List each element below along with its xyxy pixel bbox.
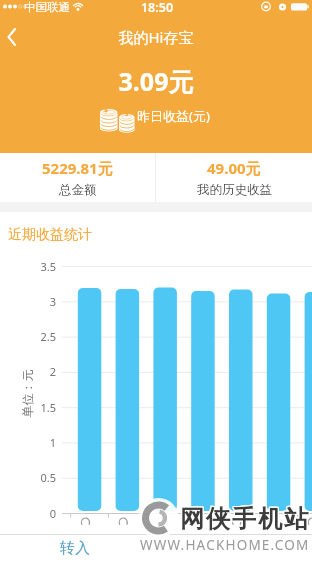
button[interactable]: 转入 (0, 535, 150, 562)
staticText: 3.09元 (56, 64, 256, 98)
staticText: WWW.HACKHOME.COM (140, 536, 310, 554)
staticText: 转入 (60, 539, 90, 558)
staticText: 近期收益统计 (8, 226, 92, 244)
staticText: $ (104, 105, 109, 115)
staticText: 中国联通 (24, 0, 70, 14)
staticText: 2 (20, 364, 56, 379)
staticText: 0 (20, 506, 56, 521)
staticText: 总金额 (59, 182, 97, 198)
staticText: 网侠手机站 (179, 504, 309, 534)
staticText: 网侠手机站 (178, 504, 308, 534)
staticText: 我的历史收益 (197, 182, 272, 198)
staticText: 3 (20, 294, 56, 309)
staticText: 网侠手机站 (180, 503, 310, 533)
staticText: 网侠手机站 (178, 505, 308, 535)
staticText: 网侠手机站 (180, 505, 310, 535)
staticText: 1 (20, 435, 56, 450)
button[interactable] (0, 22, 34, 52)
staticText: 网侠手机站 (178, 503, 308, 533)
button[interactable]: 5229.81元 (0, 153, 155, 202)
staticText: 网侠手机站 (179, 503, 309, 533)
staticText: 2.5 (20, 329, 56, 344)
staticText: 0.5 (20, 470, 56, 485)
staticText: $ (125, 110, 129, 118)
staticText: 昨日收益(元) (137, 107, 210, 125)
button[interactable]: 49.00元 (156, 153, 312, 202)
staticText: 我的Hi存宝 (56, 27, 256, 47)
staticText: 单位：元 (19, 369, 34, 417)
staticText: 1.5 (20, 400, 56, 415)
staticText: 49.00元 (207, 158, 261, 178)
staticText: 网侠手机站 (179, 505, 309, 535)
staticText: 网侠手机站 (180, 504, 310, 534)
staticText: 5229.81元 (42, 158, 113, 178)
staticText: 3.5 (20, 259, 56, 274)
staticText: 18:50 (127, 0, 187, 16)
